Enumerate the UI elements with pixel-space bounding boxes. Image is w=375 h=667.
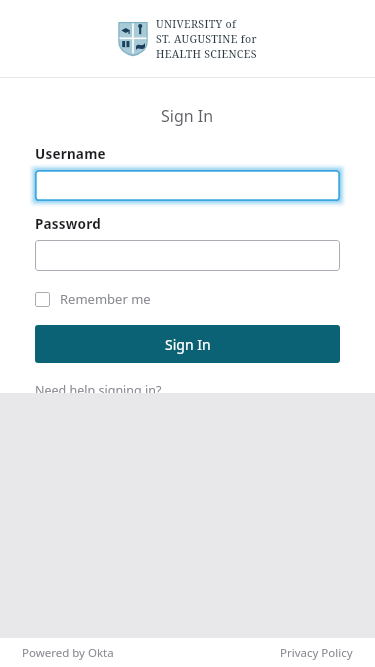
staticText: Sign In <box>161 105 214 127</box>
button[interactable]: Username input <box>35 170 340 201</box>
staticText: Privacy Policy <box>280 645 353 661</box>
staticText: Need help signing in? <box>35 382 162 393</box>
button[interactable]: Privacy Policy <box>280 645 353 661</box>
staticText: UNIVERSITY of <box>156 17 237 31</box>
button[interactable]: Need help signing in? <box>35 382 162 393</box>
button[interactable]: Password input <box>35 240 340 271</box>
button[interactable]: Remember me <box>35 288 151 310</box>
staticText: Sign In <box>165 335 211 354</box>
button[interactable]: Powered by Okta <box>22 645 114 661</box>
staticText: Password <box>35 215 101 233</box>
staticText: HEALTH SCIENCES <box>156 47 257 61</box>
staticText: ST. AUGUSTINE for <box>156 32 257 46</box>
staticText: Powered by Okta <box>22 645 114 661</box>
staticText: Remember me <box>60 290 151 308</box>
button[interactable]: Sign In <box>35 325 340 363</box>
staticText: Username <box>35 145 106 163</box>
